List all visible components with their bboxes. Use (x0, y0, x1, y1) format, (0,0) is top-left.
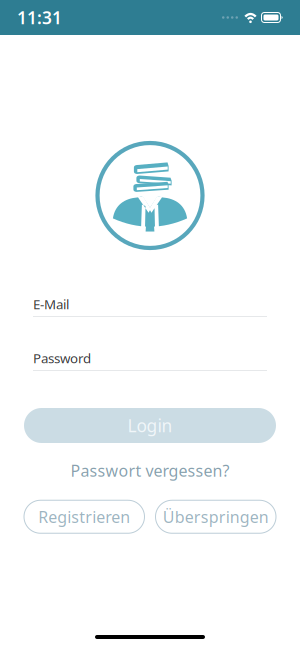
staticText: Login (127, 414, 172, 437)
button[interactable]: Registrieren (24, 500, 144, 533)
button[interactable]: Login (24, 408, 276, 443)
button[interactable]: Überspringen (155, 500, 276, 533)
staticText: Registrieren (38, 506, 130, 527)
staticText: 11:31 (17, 6, 62, 29)
staticText: Password (33, 349, 91, 367)
button[interactable]: Passwort vergessen? (70, 460, 229, 481)
staticText: Passwort vergessen? (70, 460, 229, 481)
staticText: Überspringen (163, 506, 269, 527)
staticText: E-Mail (33, 295, 69, 313)
